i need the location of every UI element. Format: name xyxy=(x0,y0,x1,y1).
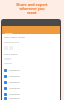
button[interactable]: Export xyxy=(2,26,60,34)
staticText: Select export format xyxy=(4,36,25,39)
staticText: Application xyxy=(9,75,21,78)
button[interactable]: Application xyxy=(2,85,60,91)
staticText: Application xyxy=(9,97,21,100)
staticText: Share and export wherever you want xyxy=(16,2,48,15)
staticText: Export xyxy=(5,31,13,34)
staticText: Application xyxy=(9,69,21,72)
button[interactable]: Application xyxy=(2,91,60,97)
staticText: Application xyxy=(9,93,21,96)
button[interactable]: Application xyxy=(2,79,60,85)
staticText: Select quality xyxy=(4,53,18,56)
staticText: Choose file type xyxy=(4,41,19,44)
button[interactable]: Application xyxy=(2,73,60,79)
button[interactable] xyxy=(4,58,11,60)
staticText: Application xyxy=(9,87,21,90)
button[interactable]: Application xyxy=(2,67,60,73)
staticText: Application xyxy=(9,81,21,84)
staticText: Share to xyxy=(4,62,12,65)
button[interactable]: Application xyxy=(2,97,60,100)
